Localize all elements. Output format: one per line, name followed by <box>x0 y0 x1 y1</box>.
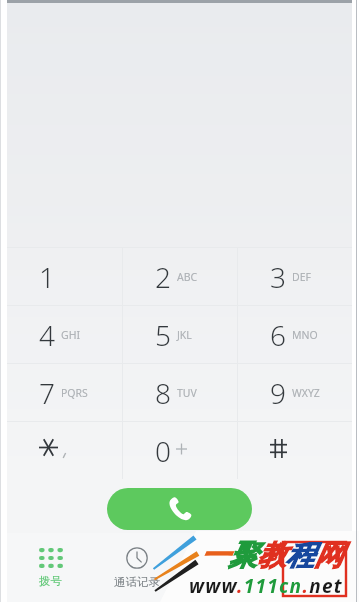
staticText: ABC <box>177 270 198 284</box>
button[interactable]: 拨号 <box>7 533 94 602</box>
staticText: 收藏 <box>298 575 321 589</box>
staticText: DEF <box>292 270 311 284</box>
button[interactable]: Call <box>107 488 252 530</box>
staticText: 0 <box>155 432 171 470</box>
button[interactable]: 0 <box>123 422 237 479</box>
staticText: 6 <box>270 316 286 354</box>
staticText: 7 <box>39 374 55 412</box>
staticText: 拨号 <box>39 574 62 588</box>
button[interactable]: 9 <box>238 364 352 421</box>
button[interactable]: 3 <box>238 248 352 305</box>
staticText: 9 <box>270 374 286 412</box>
button[interactable]: 收藏 <box>266 533 352 602</box>
button[interactable]: 7 <box>7 364 122 421</box>
button[interactable]: 8 <box>123 364 237 421</box>
button[interactable]: 联系人 <box>180 533 266 602</box>
staticText: 2 <box>155 258 171 296</box>
button[interactable]: 2 <box>123 248 237 305</box>
staticText: 8 <box>155 374 171 412</box>
button[interactable] <box>7 422 122 479</box>
button[interactable]: 6 <box>238 306 352 363</box>
button[interactable] <box>238 422 352 479</box>
staticText: WXYZ <box>292 386 320 400</box>
button[interactable]: 通话记录 <box>94 533 180 602</box>
staticText: GHI <box>61 328 80 342</box>
button[interactable]: 5 <box>123 306 237 363</box>
staticText: MNO <box>292 328 318 342</box>
staticText: 5 <box>155 316 171 354</box>
staticText: 1 <box>39 258 55 296</box>
staticText: www.111cn.net <box>189 573 343 599</box>
staticText: 4 <box>39 316 55 354</box>
staticText: PQRS <box>61 386 88 400</box>
staticText: TUV <box>177 386 197 400</box>
staticText: JKL <box>177 328 192 342</box>
staticText: 联系人 <box>206 575 241 589</box>
staticText: 一聚教程网 <box>200 538 343 574</box>
staticText: 通话记录 <box>114 575 160 589</box>
button[interactable]: 1 <box>7 248 122 305</box>
staticText: 3 <box>270 258 286 296</box>
button[interactable]: 4 <box>7 306 122 363</box>
